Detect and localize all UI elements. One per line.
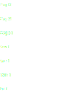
staticText: Item 1 <box>0 45 9 49</box>
staticText: Flag 01 <box>0 3 11 7</box>
staticText: Item 1 <box>0 73 11 77</box>
staticText: Flag 01 <box>0 31 13 35</box>
staticText: Flag 01 <box>0 17 11 21</box>
staticText: Item 1 <box>0 59 9 63</box>
staticText: Opt 1 <box>0 87 7 91</box>
